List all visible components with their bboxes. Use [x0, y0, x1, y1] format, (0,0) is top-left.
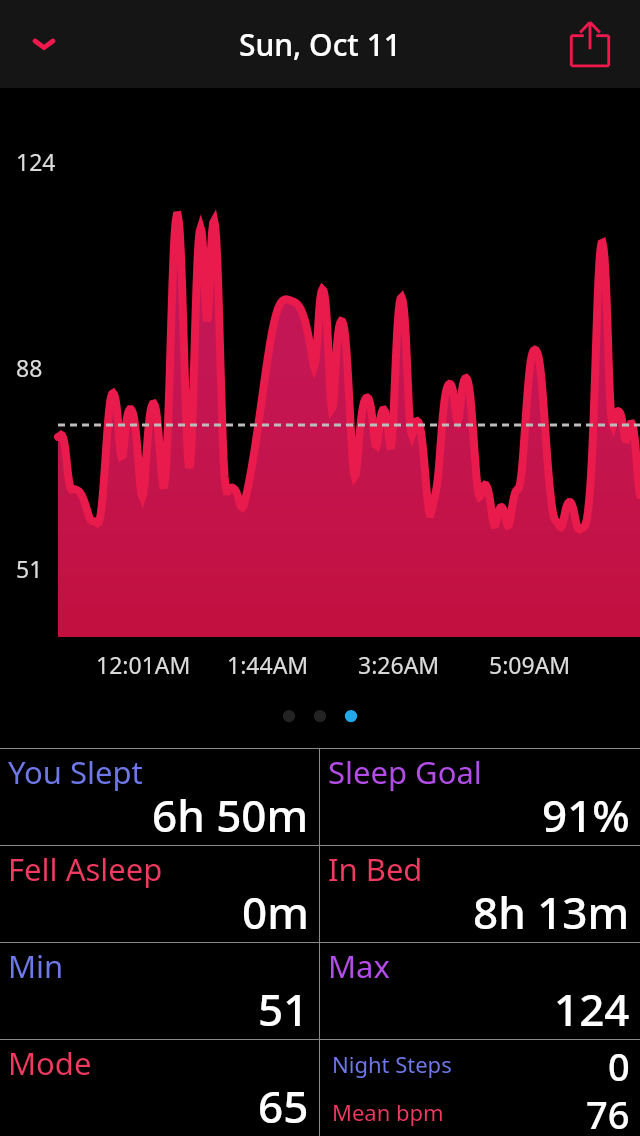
- staticText: Night Steps: [332, 1049, 452, 1079]
- button[interactable]: Night Steps: [320, 1040, 640, 1136]
- staticText: Mean bpm: [332, 1097, 444, 1127]
- staticText: You Slept: [8, 751, 143, 793]
- staticText: 124: [16, 146, 56, 177]
- staticText: 65: [258, 1076, 309, 1136]
- staticText: 1:44AM: [227, 649, 358, 680]
- button[interactable]: Collapse: [10, 10, 78, 78]
- staticText: 51: [16, 553, 43, 584]
- staticText: Sun, Oct 11: [239, 24, 401, 65]
- staticText: Mode: [8, 1042, 92, 1084]
- button[interactable]: Fell Asleep: [0, 846, 319, 942]
- staticText: 124: [554, 979, 630, 1039]
- staticText: 3:26AM: [358, 649, 489, 680]
- button[interactable]: You Slept: [0, 749, 319, 845]
- staticText: 0m: [242, 882, 309, 942]
- button[interactable]: Max: [320, 943, 640, 1039]
- staticText: 8h 13m: [473, 882, 630, 942]
- staticText: Min: [8, 945, 64, 987]
- staticText: 91%: [542, 785, 630, 845]
- staticText: In Bed: [328, 848, 423, 890]
- staticText: 51: [258, 979, 309, 1039]
- staticText: 12:01AM: [96, 649, 227, 680]
- staticText: 0: [608, 1040, 630, 1088]
- staticText: Max: [328, 945, 390, 987]
- staticText: 5:09AM: [489, 649, 620, 680]
- staticText: 88: [16, 352, 43, 383]
- staticText: 6h 50m: [152, 785, 309, 845]
- button[interactable]: Mode: [0, 1040, 319, 1136]
- button[interactable]: Min: [0, 943, 319, 1039]
- staticText: Fell Asleep: [8, 848, 163, 890]
- staticText: 76: [586, 1088, 630, 1136]
- button[interactable]: Share: [554, 8, 626, 80]
- staticText: Sleep Goal: [328, 751, 482, 793]
- button[interactable]: In Bed: [320, 846, 640, 942]
- button[interactable]: Sleep Goal: [320, 749, 640, 845]
